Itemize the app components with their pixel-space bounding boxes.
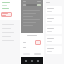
button[interactable]: [46, 6, 62, 14]
button[interactable]: [46, 16, 62, 24]
button[interactable]: [46, 46, 62, 54]
button[interactable]: [46, 36, 62, 44]
button[interactable]: Highlighted item: [1, 12, 12, 17]
button[interactable]: [34, 53, 41, 55]
button[interactable]: [46, 26, 62, 34]
button[interactable]: Selected option: [35, 40, 41, 45]
